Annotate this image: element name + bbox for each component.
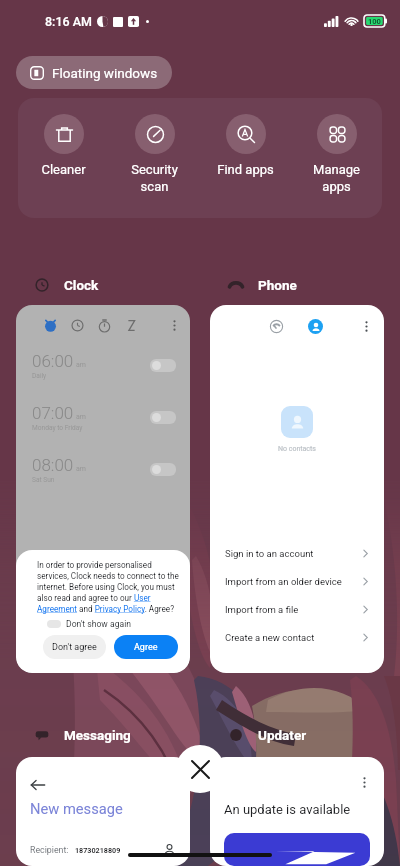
button[interactable]: More options <box>210 757 384 866</box>
button[interactable]: Dialpad <box>210 305 384 673</box>
button[interactable]: Floating windows <box>16 56 172 89</box>
staticText: 18730218809 <box>75 846 121 854</box>
button[interactable]: Import from an older device <box>210 567 384 595</box>
button[interactable]: More options <box>357 775 372 790</box>
button[interactable]: More options <box>167 318 182 333</box>
staticText: Sign in to an account <box>225 548 314 559</box>
button[interactable]: Manage apps <box>291 98 382 218</box>
staticText: 06:00 <box>32 351 74 371</box>
button[interactable]: Updater <box>223 723 313 747</box>
staticText: Recipient: <box>30 845 69 855</box>
button[interactable]: Phone <box>223 273 303 297</box>
staticText: Messaging <box>64 727 131 743</box>
button[interactable]: Don't agree <box>43 635 106 659</box>
staticText: 07:00 <box>32 403 74 423</box>
staticText: Import from an older device <box>225 576 342 587</box>
staticText: Don't agree <box>52 642 97 653</box>
staticText: No contacts <box>278 445 316 453</box>
staticText: 8:16 AM <box>45 14 92 29</box>
button[interactable]: Back <box>30 777 46 793</box>
staticText: Manage apps <box>291 162 382 195</box>
staticText: An update is available <box>224 802 351 817</box>
button[interactable]: Don't show again <box>47 619 131 629</box>
staticText: am <box>76 361 86 369</box>
staticText: Monday to Friday <box>32 424 83 432</box>
button[interactable]: 08:00 <box>16 443 190 495</box>
staticText: Import from a file <box>225 604 299 615</box>
staticText: Daily <box>32 372 47 380</box>
button[interactable]: Create a new contact <box>210 623 384 651</box>
staticText: Find apps <box>200 162 291 177</box>
staticText: Clock <box>64 277 99 293</box>
staticText: Don't show again <box>66 619 131 629</box>
button[interactable]: Clock <box>29 273 105 297</box>
button[interactable]: Close all <box>176 745 224 793</box>
staticText: Floating windows <box>52 65 158 81</box>
button[interactable]: Dialpad <box>270 320 283 333</box>
button[interactable]: Agree <box>114 635 178 659</box>
button[interactable]: 06:00 <box>16 339 190 391</box>
button[interactable]: More options <box>359 319 374 334</box>
button[interactable]: Find apps <box>200 98 291 218</box>
button[interactable]: Back <box>16 757 190 866</box>
button[interactable]: 07:00 <box>16 391 190 443</box>
staticText: Security scan <box>109 162 200 195</box>
staticText: Sat Sun <box>32 476 55 484</box>
button[interactable]: More options <box>16 305 190 673</box>
staticText: Create a new contact <box>225 632 315 643</box>
button[interactable]: Messaging <box>29 723 137 747</box>
staticText: Updater <box>258 727 307 743</box>
button[interactable]: Security scan <box>109 98 200 218</box>
staticText: Cleaner <box>18 162 109 177</box>
button[interactable]: Cleaner <box>18 98 109 218</box>
staticText: 08:00 <box>32 455 74 475</box>
staticText: New message <box>30 800 123 817</box>
staticText: In order to provide personalised service… <box>37 560 182 614</box>
button[interactable]: Sign in to an account <box>210 539 384 567</box>
staticText: Agree <box>134 642 158 653</box>
staticText: Phone <box>258 277 297 293</box>
staticText: am <box>76 465 86 473</box>
staticText: 100 <box>368 17 381 26</box>
staticText: am <box>76 413 86 421</box>
button[interactable]: Import from a file <box>210 595 384 623</box>
button[interactable]: Contacts <box>308 319 323 334</box>
